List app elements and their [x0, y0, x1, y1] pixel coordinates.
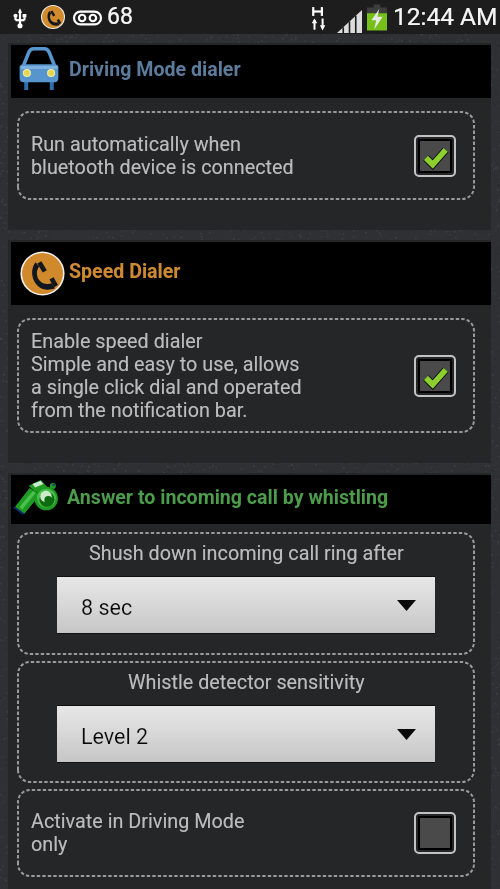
staticText: Level 2 — [81, 724, 149, 749]
staticText: Run automatically when bluetooth device … — [31, 133, 414, 179]
staticText: Answer to incoming call by whistling — [67, 486, 389, 509]
staticText: 12:44 AM — [393, 2, 498, 31]
staticText: 8 sec — [81, 595, 133, 620]
button[interactable]: Answer to incoming call by whistling — [11, 475, 491, 524]
button[interactable]: Driving Mode dialer — [11, 45, 491, 98]
staticText: Shush down incoming call ring after — [89, 542, 404, 565]
staticText: Enable speed dialer Simple and easy to u… — [31, 330, 414, 422]
button[interactable]: Level 2 — [57, 705, 435, 763]
button[interactable]: Checked — [414, 355, 456, 397]
staticText: Activate in Driving Mode only — [31, 810, 414, 856]
staticText: 68 — [107, 3, 133, 30]
staticText: Speed Dialer — [69, 260, 181, 283]
button[interactable]: Speed Dialer — [11, 242, 491, 305]
staticText: Whistle detector sensitivity — [128, 671, 365, 694]
staticText: Driving Mode dialer — [69, 58, 241, 81]
button[interactable]: Checked — [414, 135, 456, 177]
button[interactable]: Unchecked — [414, 812, 456, 854]
button[interactable]: 8 sec — [57, 576, 435, 634]
